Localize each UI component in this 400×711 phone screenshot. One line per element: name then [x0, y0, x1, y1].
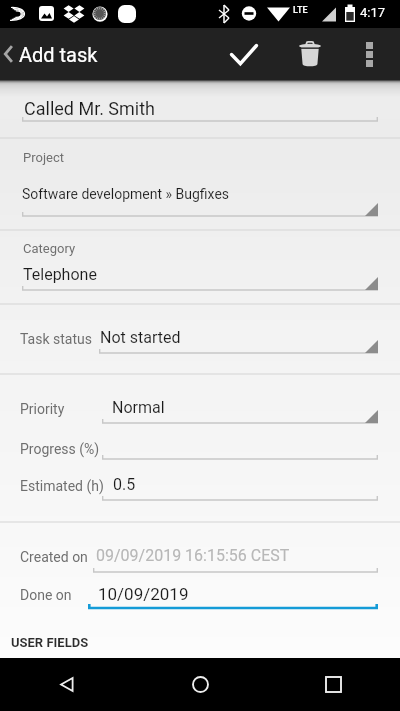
button[interactable]: Add task	[0, 28, 110, 80]
staticText: 09/09/2019 16:15:56 CEST	[96, 546, 290, 565]
staticText: Telephone	[23, 265, 97, 284]
button[interactable]: Delete	[285, 28, 335, 80]
button[interactable]	[0, 477, 400, 522]
staticText: Project	[23, 150, 64, 165]
staticText: USER FIELDS	[11, 635, 89, 650]
staticText: Not started	[100, 328, 181, 347]
button[interactable]	[0, 85, 400, 138]
staticText: Created on	[20, 549, 88, 565]
button[interactable]: Recents	[267, 658, 400, 711]
button[interactable]	[0, 231, 400, 304]
staticText: Normal	[112, 398, 165, 417]
staticText: 0.5	[113, 475, 136, 494]
button[interactable]	[0, 305, 400, 374]
button[interactable]	[0, 579, 400, 618]
staticText: Estimated (h)	[20, 478, 104, 494]
staticText: 4:17	[360, 5, 386, 20]
staticText: Add task	[19, 43, 98, 66]
staticText: Task status	[20, 331, 92, 347]
staticText: Priority	[20, 401, 65, 417]
button[interactable]: Back	[0, 658, 134, 711]
staticText: Category	[23, 241, 76, 256]
button[interactable]	[0, 139, 400, 230]
button[interactable]: More options	[346, 28, 392, 80]
button[interactable]: Save	[219, 28, 269, 80]
staticText: LTE	[293, 5, 308, 16]
staticText: 10/09/2019	[98, 584, 189, 604]
staticText: Software development » Bugfixes	[22, 186, 230, 202]
button[interactable]	[0, 375, 400, 440]
button[interactable]: Home	[134, 658, 267, 711]
staticText: Called Mr. Smith	[24, 98, 156, 119]
staticText: Done on	[20, 587, 72, 603]
staticText: Progress (%)	[20, 441, 100, 457]
button[interactable]	[0, 441, 400, 476]
button[interactable]	[0, 523, 400, 578]
